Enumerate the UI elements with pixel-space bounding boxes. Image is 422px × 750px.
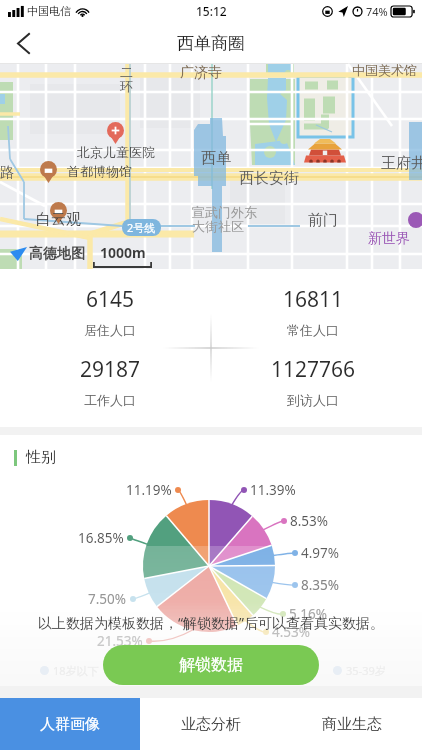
staticText: 广济寺 bbox=[180, 64, 222, 82]
staticText: 74% bbox=[366, 4, 388, 19]
staticText: 11.39% bbox=[250, 481, 296, 499]
staticText: 11.19% bbox=[126, 481, 172, 499]
staticText: 18岁以下 bbox=[53, 663, 99, 678]
button[interactable]: 16811 bbox=[223, 285, 403, 338]
staticText: 性别 bbox=[26, 448, 56, 467]
staticText: 西长安街 bbox=[239, 169, 299, 188]
button[interactable]: 人群画像 bbox=[0, 698, 140, 750]
staticText: 以上数据为模板数据，“解锁数据”后可以查看真实数据。 bbox=[38, 613, 385, 632]
staticText: 1000m bbox=[100, 243, 146, 262]
staticText: 25-29岁 bbox=[203, 663, 243, 678]
button[interactable]: 商业生态 bbox=[281, 698, 422, 750]
staticText: 前门 bbox=[308, 211, 338, 230]
staticText: 8.53% bbox=[290, 512, 329, 530]
staticText: 人群画像 bbox=[40, 715, 100, 734]
staticText: 宣武门外东 大街社区 bbox=[192, 204, 257, 235]
staticText: 新世界 bbox=[368, 230, 410, 248]
staticText: 解锁数据 bbox=[179, 655, 243, 675]
button[interactable]: 解锁数据 bbox=[103, 645, 319, 685]
staticText: 4.97% bbox=[301, 544, 340, 562]
button[interactable]: 6145 bbox=[20, 285, 200, 338]
button[interactable]: 业态分析 bbox=[140, 698, 281, 750]
staticText: 15:12 bbox=[196, 3, 227, 19]
staticText: 工作人口 bbox=[84, 392, 136, 408]
staticText: 高德地图 bbox=[29, 245, 85, 263]
staticText: 16811 bbox=[283, 285, 344, 314]
staticText: 首都博物馆 bbox=[67, 163, 132, 179]
staticText: 中国美术馆 bbox=[352, 62, 417, 78]
staticText: 路 bbox=[0, 164, 14, 182]
button[interactable]: 1127766 bbox=[223, 355, 403, 408]
staticText: 北京儿童医院 bbox=[77, 144, 155, 160]
staticText: 7.50% bbox=[88, 590, 127, 608]
staticText: 商业生态 bbox=[322, 715, 382, 734]
staticText: 4.53% bbox=[272, 623, 311, 641]
staticText: 35-39岁 bbox=[346, 663, 386, 678]
button[interactable]: Back bbox=[0, 22, 46, 64]
staticText: 29187 bbox=[80, 355, 141, 384]
staticText: 8.35% bbox=[301, 576, 340, 594]
staticText: 5.16% bbox=[289, 605, 328, 623]
staticText: 居住人口 bbox=[84, 322, 136, 338]
staticText: 16.85% bbox=[78, 529, 124, 547]
staticText: 中国电信 bbox=[27, 4, 71, 18]
staticText: 6145 bbox=[86, 285, 135, 314]
staticText: 二 环 bbox=[120, 64, 133, 95]
staticText: 21.53% bbox=[97, 632, 143, 650]
staticText: 业态分析 bbox=[181, 715, 241, 734]
button[interactable]: 29187 bbox=[20, 355, 200, 408]
staticText: 王府井 bbox=[381, 154, 422, 173]
staticText: 常住人口 bbox=[287, 322, 339, 338]
staticText: 1127766 bbox=[271, 355, 356, 384]
staticText: 西单商圈 bbox=[177, 33, 245, 54]
staticText: 2号线 bbox=[127, 220, 156, 235]
staticText: 白云观 bbox=[36, 210, 81, 229]
staticText: 到访人口 bbox=[287, 392, 339, 408]
staticText: 西单 bbox=[201, 149, 231, 168]
